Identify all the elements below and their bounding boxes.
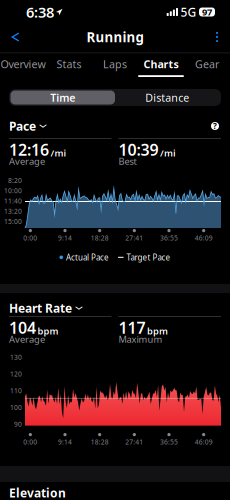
button[interactable]: Back	[4, 26, 27, 48]
button[interactable]: Information	[209, 120, 221, 132]
staticText: Pace	[9, 118, 36, 134]
staticText: Maximum	[118, 333, 162, 345]
staticText: 104	[9, 317, 36, 338]
staticText: 10:39	[118, 139, 158, 160]
button[interactable]: Gear	[184, 54, 230, 79]
staticText: Best	[118, 155, 136, 167]
staticText: bpm	[37, 325, 58, 337]
staticText: Actual Pace	[66, 252, 109, 263]
staticText: Average	[9, 333, 45, 345]
staticText: bpm	[147, 325, 168, 337]
staticText: 12:16	[9, 139, 49, 160]
button[interactable]: Stats	[46, 54, 92, 79]
staticText: 10:00	[4, 186, 22, 195]
staticText: ?	[213, 121, 217, 131]
staticText: Stats	[56, 57, 81, 71]
staticText: Distance	[145, 90, 189, 105]
staticText: 6:38	[26, 2, 54, 22]
staticText: 9:14	[58, 437, 72, 446]
button[interactable]: Pace	[9, 120, 47, 132]
staticText: 18:28	[91, 233, 109, 242]
staticText: 27:41	[125, 233, 143, 242]
staticText: 9:14	[58, 233, 72, 242]
staticText: 110	[10, 386, 22, 395]
button[interactable]: Laps	[92, 54, 138, 79]
staticText: 18:28	[91, 437, 109, 446]
staticText: Running	[86, 28, 143, 46]
staticText: Elevation	[9, 485, 66, 501]
staticText: 46:09	[195, 437, 213, 446]
staticText: /mi	[50, 147, 66, 159]
button[interactable]: Charts	[138, 54, 184, 79]
staticText: 11:40	[4, 196, 22, 205]
staticText: 97	[202, 6, 212, 18]
staticText: 36:55	[160, 437, 178, 446]
button[interactable]: Heart Rate	[9, 302, 83, 314]
staticText: Heart Rate	[9, 300, 72, 316]
staticText: 120	[10, 369, 22, 378]
button[interactable]: Overview	[0, 54, 46, 79]
staticText: Overview	[0, 57, 45, 71]
staticText: Laps	[103, 57, 127, 71]
button[interactable]: Distance	[115, 90, 219, 104]
staticText: 15:00	[4, 217, 22, 226]
staticText: Charts	[143, 57, 178, 71]
staticText: 36:55	[160, 233, 178, 242]
staticText: 13:20	[4, 207, 22, 216]
staticText: 27:41	[125, 437, 143, 446]
staticText: 100	[10, 403, 22, 412]
staticText: 0:00	[23, 233, 37, 242]
staticText: 130	[10, 353, 22, 361]
staticText: 0:00	[23, 437, 37, 446]
staticText: 8:20	[8, 176, 22, 185]
button[interactable]: Time	[10, 90, 115, 104]
staticText: 90	[14, 420, 22, 428]
staticText: Target Pace	[127, 252, 171, 263]
staticText: 46:09	[195, 233, 213, 242]
staticText: 117	[118, 317, 145, 338]
staticText: Time	[50, 90, 75, 105]
staticText: Gear	[195, 57, 219, 71]
staticText: Average	[9, 155, 45, 167]
staticText: 5G	[180, 4, 196, 20]
button[interactable]: More options	[208, 26, 226, 48]
staticText: /mi	[160, 147, 176, 159]
